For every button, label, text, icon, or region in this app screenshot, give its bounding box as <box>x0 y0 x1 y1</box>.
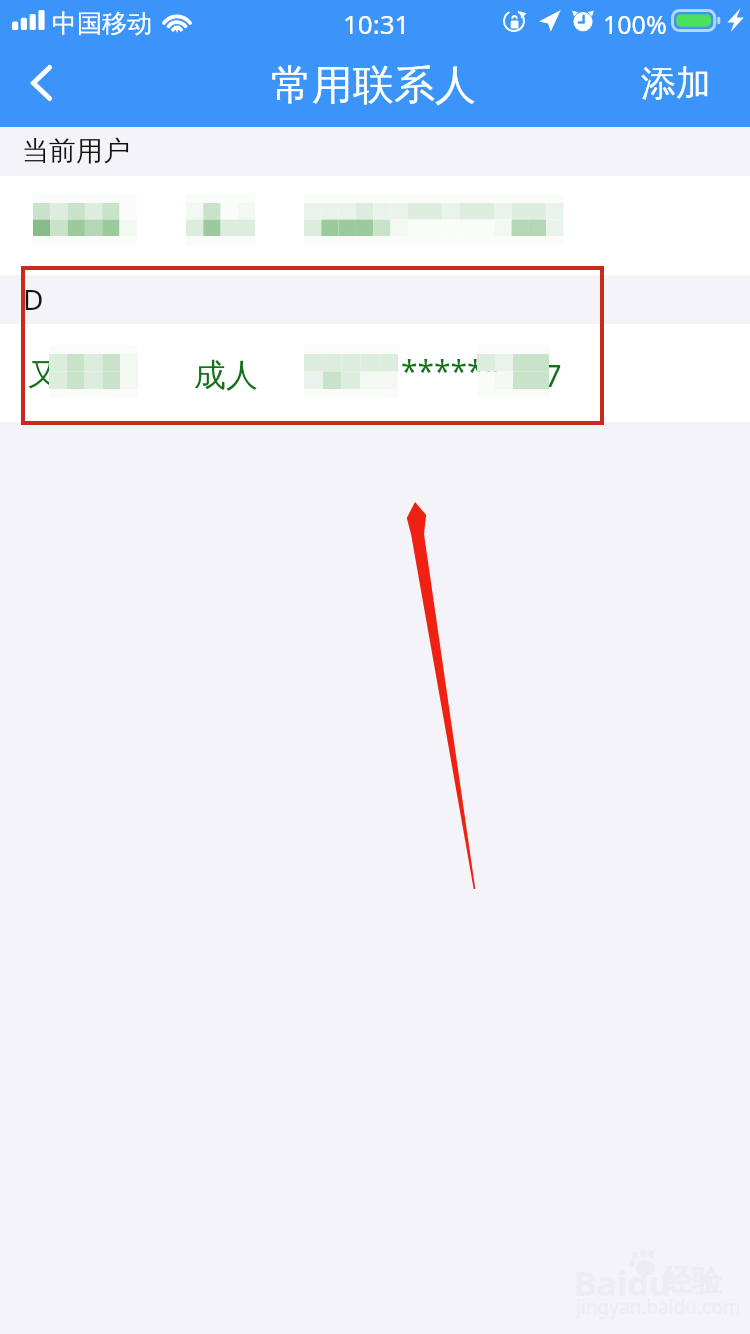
staticText: 中国移动 <box>52 8 152 39</box>
staticText: 当前用户 <box>22 134 130 168</box>
button[interactable]: 添加 <box>620 48 737 118</box>
staticText: 100% <box>603 7 667 41</box>
staticText: D <box>23 280 44 318</box>
staticText: 经验 <box>662 1262 722 1300</box>
staticText: 10:31 <box>343 6 410 41</box>
staticText: 常用联系人 <box>271 60 476 112</box>
staticText: 又 <box>28 355 59 394</box>
staticText: 添加 <box>641 61 711 105</box>
staticText: 成人 <box>194 355 258 395</box>
button[interactable] <box>0 176 750 275</box>
staticText: ****** <box>401 350 501 391</box>
button[interactable]: 又 <box>0 324 750 422</box>
staticText: 7 <box>544 354 562 396</box>
staticText: Baidu <box>574 1260 671 1306</box>
button[interactable]: Back <box>6 48 76 118</box>
